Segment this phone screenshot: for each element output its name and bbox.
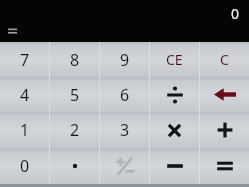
- staticText: 2: [70, 119, 80, 141]
- staticText: 0: [20, 155, 30, 177]
- staticText: 6: [120, 84, 130, 106]
- button[interactable]: Backspace: [200, 77, 249, 112]
- button[interactable]: Equals: [200, 148, 249, 184]
- button[interactable]: 8: [50, 42, 99, 77]
- button[interactable]: 1: [0, 112, 49, 148]
- button[interactable]: 6: [100, 77, 149, 112]
- staticText: 5: [70, 84, 80, 106]
- button[interactable]: C: [200, 42, 249, 77]
- button[interactable]: Plus minus: [100, 148, 149, 184]
- button[interactable]: Divide: [150, 77, 199, 112]
- staticText: 3: [120, 119, 130, 141]
- button[interactable]: Plus: [200, 112, 249, 148]
- button[interactable]: Minus: [150, 148, 199, 184]
- button[interactable]: 4: [0, 77, 49, 112]
- button[interactable]: 7: [0, 42, 49, 77]
- button[interactable]: 2: [50, 112, 99, 148]
- staticText: 0: [231, 4, 240, 23]
- button[interactable]: 9: [100, 42, 149, 77]
- staticText: CE: [166, 50, 183, 69]
- button[interactable]: 5: [50, 77, 99, 112]
- staticText: 4: [20, 84, 30, 106]
- staticText: C: [220, 50, 229, 69]
- staticText: 1: [20, 119, 30, 141]
- staticText: 9: [120, 49, 130, 71]
- button[interactable]: 0: [0, 148, 49, 184]
- staticText: 7: [20, 49, 30, 71]
- button[interactable]: Multiply: [150, 112, 199, 148]
- button[interactable]: Decimal point: [50, 148, 99, 184]
- button[interactable]: 3: [100, 112, 149, 148]
- button[interactable]: CE: [150, 42, 199, 77]
- staticText: 8: [70, 49, 80, 71]
